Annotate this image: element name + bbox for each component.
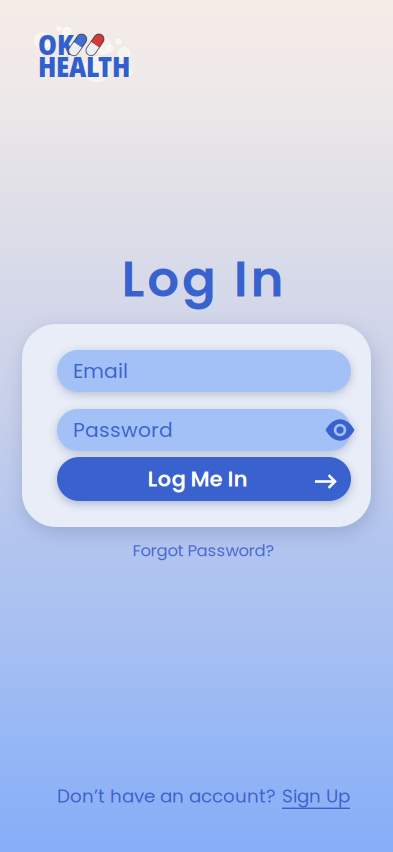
staticText: HEALTH bbox=[38, 47, 130, 85]
staticText: Email bbox=[73, 357, 128, 385]
staticText: Log Me In bbox=[147, 464, 247, 494]
button[interactable]: Password bbox=[57, 409, 351, 451]
button[interactable]: Email bbox=[57, 350, 351, 392]
staticText: Don’t have an account? bbox=[57, 783, 276, 809]
staticText: OK bbox=[38, 25, 74, 63]
button[interactable]: Forgot Password? bbox=[132, 539, 274, 562]
button[interactable]: Log Me In bbox=[57, 457, 351, 501]
staticText: Forgot Password? bbox=[132, 539, 274, 562]
staticText: Password bbox=[73, 416, 173, 444]
staticText: Log In bbox=[121, 244, 283, 314]
staticText: Sign Up bbox=[282, 783, 350, 809]
button[interactable]: Don’t have an account? bbox=[57, 783, 350, 809]
